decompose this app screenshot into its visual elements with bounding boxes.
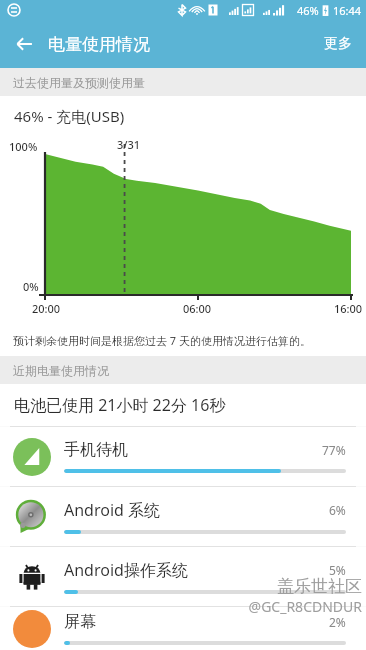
- staticText: 46% - 充电(USB): [14, 106, 125, 126]
- staticText: 77%: [322, 442, 346, 458]
- staticText: 0%: [23, 279, 39, 294]
- staticText: 预计剩余使用时间是根据您过去 7 天的使用情况进行估算的。: [13, 333, 312, 348]
- staticText: 2%: [329, 614, 346, 630]
- staticText: @GC_R8CDNDUR: [248, 597, 362, 616]
- staticText: 06:00: [183, 301, 212, 316]
- staticText: 手机待机: [64, 440, 322, 460]
- staticText: Android操作系统: [64, 559, 329, 581]
- staticText: 16:44: [333, 3, 362, 18]
- button[interactable]: 更多: [310, 23, 366, 65]
- staticText: 5%: [329, 562, 346, 578]
- staticText: 电量使用情况: [48, 34, 150, 55]
- button[interactable]: 电池已使用 21小时 22分 16秒: [0, 384, 366, 426]
- staticText: Android 系统: [64, 499, 329, 521]
- staticText: 更多: [324, 35, 352, 53]
- staticText: 盖乐世社区: [277, 576, 362, 597]
- staticText: 近期电量使用情况: [13, 363, 109, 378]
- staticText: 16:00: [334, 301, 363, 316]
- button[interactable]: Back: [0, 20, 48, 68]
- button[interactable]: Android操作系统: [0, 547, 366, 606]
- staticText: 电池已使用 21小时 22分 16秒: [14, 394, 226, 416]
- button[interactable]: 手机待机: [0, 427, 366, 486]
- staticText: 屏幕: [64, 612, 329, 632]
- staticText: 6%: [329, 502, 346, 518]
- button[interactable]: 屏幕: [0, 607, 366, 650]
- staticText: 100%: [9, 139, 38, 154]
- staticText: 过去使用量及预测使用量: [13, 75, 145, 90]
- staticText: 46%: [297, 3, 319, 18]
- staticText: 20:00: [32, 301, 61, 316]
- staticText: 3/31: [117, 137, 141, 152]
- button[interactable]: Android 系统: [0, 487, 366, 546]
